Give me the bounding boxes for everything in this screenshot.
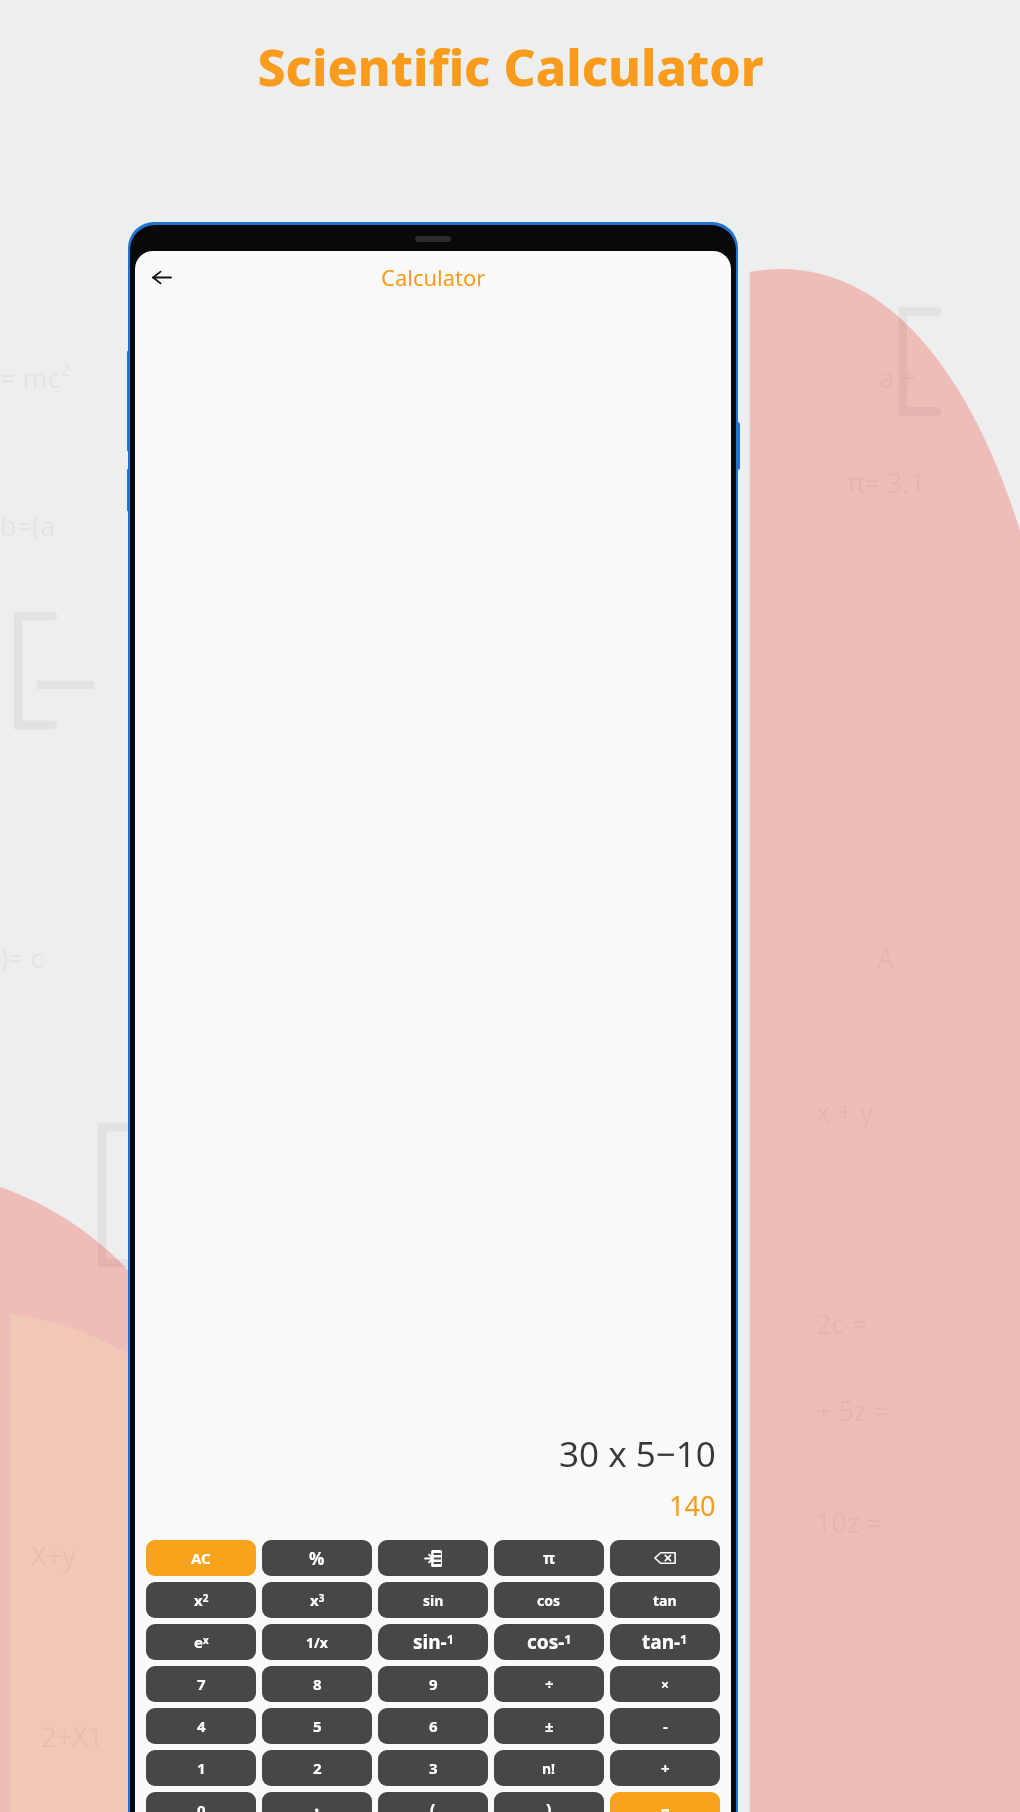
button[interactable]: 7 bbox=[146, 1666, 256, 1702]
staticText: 8 bbox=[313, 1674, 322, 1694]
button[interactable]: 6 bbox=[378, 1708, 488, 1744]
button[interactable]: 0 bbox=[146, 1792, 256, 1812]
staticText: · bbox=[314, 1797, 320, 1812]
staticText: × bbox=[661, 1675, 670, 1694]
staticText: 6 bbox=[429, 1716, 438, 1736]
staticText: 5 bbox=[313, 1716, 322, 1736]
staticText: 1 bbox=[197, 1758, 206, 1778]
button[interactable]: sin-1 bbox=[378, 1624, 488, 1660]
staticText: cos-1 bbox=[527, 1629, 572, 1655]
button[interactable]: n! bbox=[494, 1750, 604, 1786]
button[interactable]: · bbox=[262, 1792, 372, 1812]
staticText: 3 bbox=[429, 1758, 438, 1778]
staticText: 30 x 5−10 bbox=[559, 1430, 716, 1478]
staticText: ) bbox=[546, 1799, 552, 1812]
button[interactable]: cos bbox=[494, 1582, 604, 1618]
button[interactable]: ± bbox=[494, 1708, 604, 1744]
staticText: ex bbox=[194, 1632, 209, 1652]
staticText: x2 bbox=[194, 1590, 209, 1610]
button[interactable]: 2 bbox=[262, 1750, 372, 1786]
staticText: X+y bbox=[31, 1537, 77, 1574]
staticText: 9 bbox=[429, 1674, 438, 1694]
button[interactable]: ÷ bbox=[494, 1666, 604, 1702]
button[interactable]: π bbox=[494, 1540, 604, 1576]
button[interactable]: % bbox=[262, 1540, 372, 1576]
button[interactable]: 1/x bbox=[262, 1624, 372, 1660]
staticText: Calculator bbox=[381, 262, 486, 292]
button[interactable]: = bbox=[610, 1792, 720, 1812]
button[interactable]: + bbox=[610, 1750, 720, 1786]
button[interactable]: 8 bbox=[262, 1666, 372, 1702]
staticText: 140 bbox=[669, 1487, 716, 1524]
staticText: A bbox=[877, 939, 895, 976]
staticText: + bbox=[661, 1758, 670, 1778]
staticText: a + bbox=[879, 359, 917, 396]
staticText: 4 bbox=[197, 1716, 206, 1736]
button[interactable]: History bbox=[378, 1540, 488, 1576]
staticText: Scientific Calculator bbox=[257, 33, 764, 101]
staticText: tan-1 bbox=[642, 1629, 688, 1655]
button[interactable]: 1 bbox=[146, 1750, 256, 1786]
staticText: sin-1 bbox=[413, 1629, 454, 1655]
staticText: 1/x bbox=[306, 1633, 328, 1652]
button[interactable]: Back bbox=[145, 261, 177, 293]
staticText: π bbox=[543, 1547, 555, 1569]
button[interactable]: ) bbox=[494, 1792, 604, 1812]
staticText: - bbox=[663, 1716, 668, 1736]
staticText: x3 bbox=[310, 1590, 325, 1610]
staticText: b=(a bbox=[0, 507, 56, 544]
staticText: AC bbox=[191, 1548, 211, 1568]
staticText: n! bbox=[542, 1759, 556, 1778]
staticText: 0 bbox=[197, 1800, 206, 1812]
button[interactable]: 3 bbox=[378, 1750, 488, 1786]
button[interactable]: 5 bbox=[262, 1708, 372, 1744]
button[interactable]: ex bbox=[146, 1624, 256, 1660]
button[interactable]: sin bbox=[378, 1582, 488, 1618]
staticText: 2 bbox=[313, 1758, 322, 1778]
button[interactable]: tan bbox=[610, 1582, 720, 1618]
button[interactable]: cos-1 bbox=[494, 1624, 604, 1660]
button[interactable]: ( bbox=[378, 1792, 488, 1812]
button[interactable]: - bbox=[610, 1708, 720, 1744]
staticText: % bbox=[309, 1547, 325, 1570]
button[interactable]: tan-1 bbox=[610, 1624, 720, 1660]
staticText: 7 bbox=[197, 1674, 206, 1694]
button[interactable]: 9 bbox=[378, 1666, 488, 1702]
button[interactable]: 4 bbox=[146, 1708, 256, 1744]
staticText: sin bbox=[423, 1591, 444, 1610]
staticText: ( bbox=[430, 1799, 436, 1812]
button[interactable]: x2 bbox=[146, 1582, 256, 1618]
button[interactable]: x3 bbox=[262, 1582, 372, 1618]
button[interactable]: × bbox=[610, 1666, 720, 1702]
staticText: 2+X1 bbox=[41, 1718, 104, 1755]
staticText: cos bbox=[537, 1591, 561, 1610]
staticText: = bbox=[661, 1800, 670, 1812]
button[interactable]: Backspace bbox=[610, 1540, 720, 1576]
button[interactable]: AC bbox=[146, 1540, 256, 1576]
staticText: ± bbox=[545, 1716, 554, 1736]
staticText: ÷ bbox=[545, 1674, 554, 1694]
staticText: tan bbox=[653, 1591, 677, 1610]
